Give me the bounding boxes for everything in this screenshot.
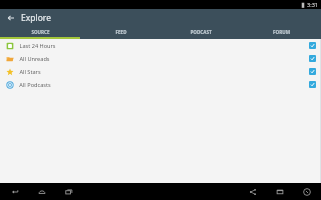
staticText: Explore	[21, 12, 51, 24]
staticText: SOURCE	[31, 29, 50, 35]
button[interactable]: Last 24 Hours	[0, 39, 321, 52]
staticText: Last 24 Hours	[19, 42, 56, 50]
button[interactable]: All Stars	[0, 65, 321, 78]
staticText: FORUM	[273, 29, 290, 35]
staticText: All Stars	[19, 68, 41, 76]
button[interactable]: All Podcasts	[0, 78, 321, 91]
staticText: 3:31	[307, 1, 318, 8]
button[interactable]: Toggle All Podcasts	[309, 81, 316, 88]
staticText: PODCAST	[190, 29, 212, 35]
button[interactable]: FEED	[81, 26, 161, 37]
button[interactable]: Toggle All Stars	[309, 68, 316, 75]
button[interactable]: SOURCE	[0, 26, 81, 37]
staticText: All Podcasts	[19, 81, 51, 89]
button[interactable]: FORUM	[241, 26, 321, 37]
staticText: FEED	[115, 29, 127, 35]
button[interactable]: Screenshot	[273, 185, 286, 198]
button[interactable]: PODCAST	[161, 26, 241, 37]
button[interactable]: Back	[8, 185, 21, 198]
button[interactable]: Toggle All Unreads	[309, 55, 316, 62]
button[interactable]: Toggle Last 24 Hours	[309, 42, 316, 49]
button[interactable]: Recents	[62, 185, 75, 198]
button[interactable]: Home	[35, 185, 48, 198]
button[interactable]: Back	[5, 12, 17, 24]
staticText: All Unreads	[19, 55, 50, 63]
button[interactable]: All Unreads	[0, 52, 321, 65]
button[interactable]: Settings	[300, 185, 313, 198]
button[interactable]: Share	[246, 185, 259, 198]
